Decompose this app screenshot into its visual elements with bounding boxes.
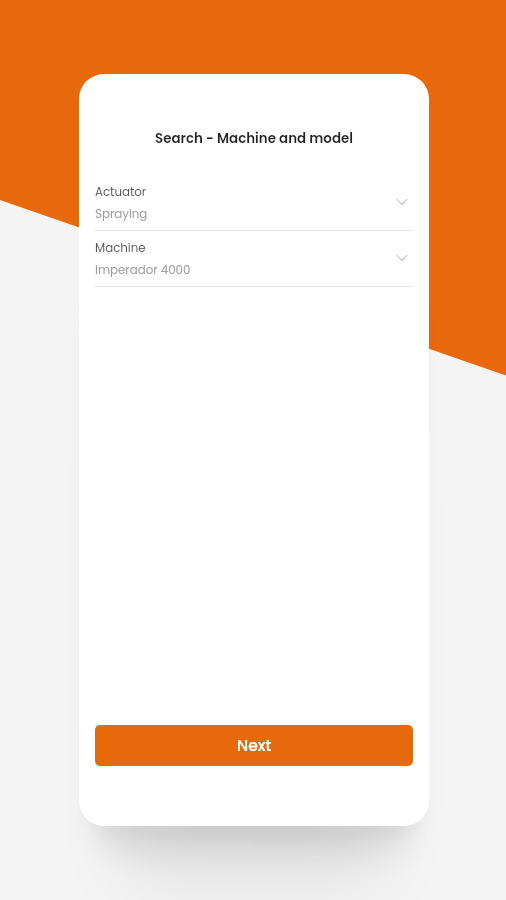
staticText: Search - Machine and model bbox=[79, 129, 429, 148]
staticText: Actuator bbox=[95, 184, 147, 201]
button[interactable]: Machine: Imperador 4000 bbox=[95, 232, 413, 288]
button[interactable]: Actuator: Spraying bbox=[95, 176, 413, 232]
staticText: Next bbox=[237, 735, 272, 757]
staticText: Spraying bbox=[95, 206, 148, 223]
staticText: Imperador 4000 bbox=[95, 262, 191, 279]
button[interactable]: Expand Actuator bbox=[394, 194, 410, 210]
button[interactable]: Expand Machine bbox=[394, 250, 410, 266]
staticText: Machine bbox=[95, 240, 146, 257]
button[interactable]: Next bbox=[95, 725, 413, 766]
